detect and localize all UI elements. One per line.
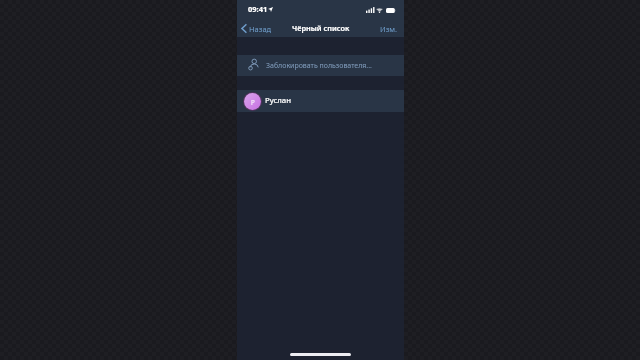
- other: Battery full: [386, 8, 396, 13]
- button[interactable]: Заблокировать пользователя...: [237, 55, 404, 76]
- staticText: Заблокировать пользователя...: [266, 61, 373, 71]
- staticText: 09:41: [248, 4, 268, 14]
- button[interactable]: Изм.: [374, 20, 404, 37]
- button[interactable]: Назад: [237, 20, 272, 37]
- other: Location services active: [268, 7, 273, 12]
- staticText: Назад: [249, 24, 272, 34]
- staticText: Р: [251, 98, 255, 106]
- staticText: Изм.: [380, 24, 398, 34]
- other: Cellular signal: [366, 7, 374, 13]
- staticText: Руслан: [265, 95, 291, 106]
- other: Wi-Fi: [376, 8, 383, 13]
- button[interactable]: Р: [237, 90, 404, 112]
- staticText: Чёрный список: [292, 23, 350, 33]
